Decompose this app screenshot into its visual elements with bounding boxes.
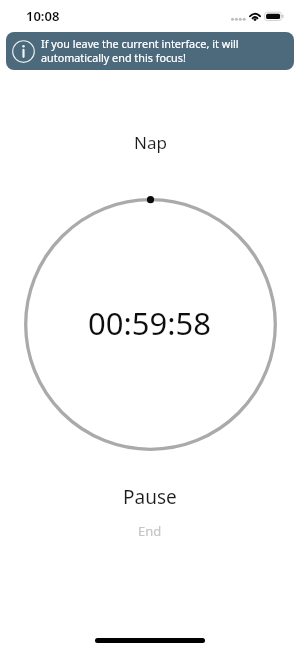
staticText: 00:59:58 — [88, 302, 212, 344]
other: Focus timer progress ring — [24, 198, 277, 451]
staticText: Nap — [134, 131, 167, 154]
button[interactable]: Information — [6, 32, 294, 70]
other: Signal, Wi-Fi and battery status — [228, 4, 290, 24]
staticText: End — [138, 522, 162, 540]
staticText: If you leave the current interface, it w… — [41, 36, 284, 66]
button[interactable]: End — [122, 519, 178, 543]
staticText: Pause — [123, 484, 177, 510]
other: Information — [11, 39, 36, 64]
button[interactable]: Pause — [109, 481, 191, 513]
staticText: 10:08 — [26, 7, 60, 25]
